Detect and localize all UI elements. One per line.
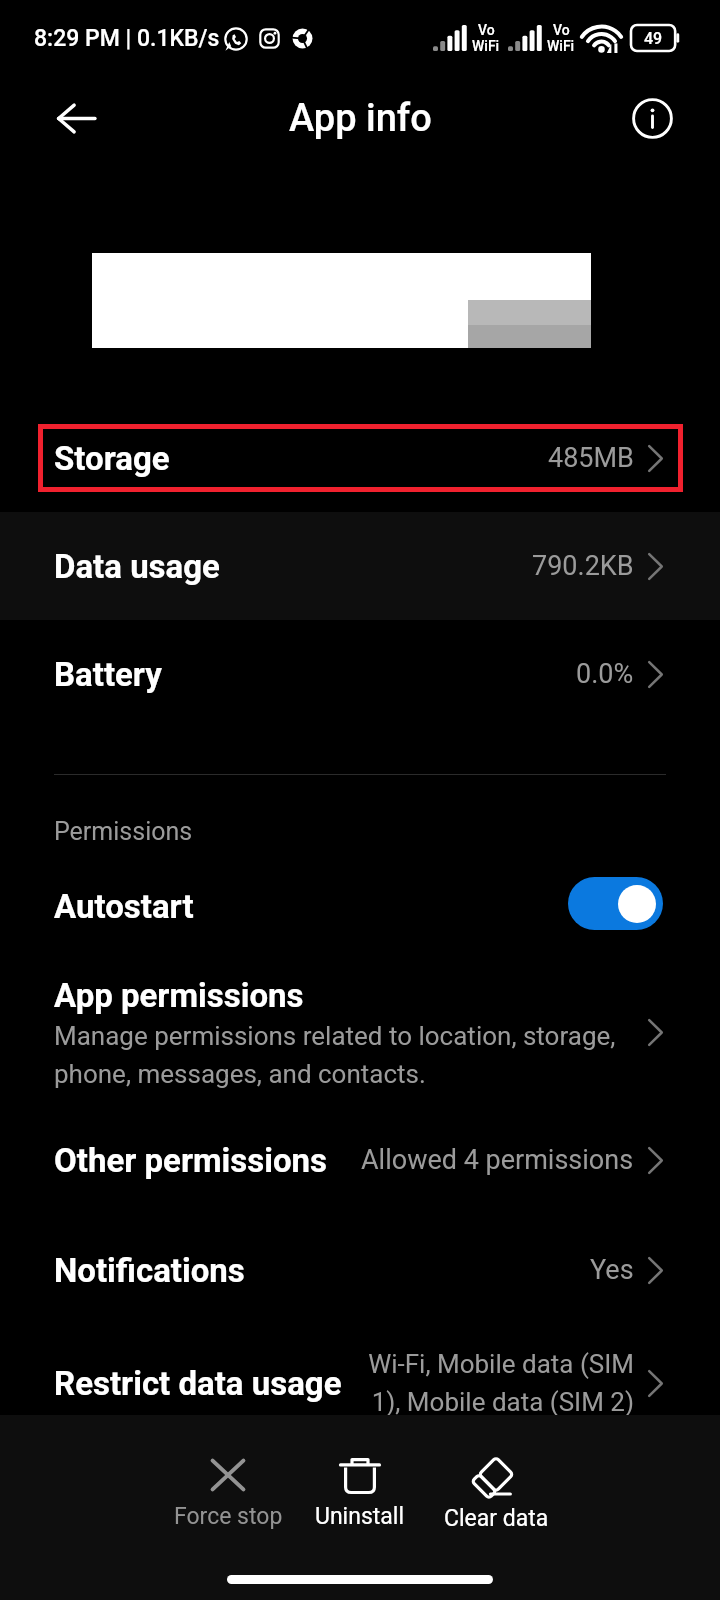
staticText: 8:29 PM | 0.1KB/s bbox=[34, 25, 220, 52]
button[interactable]: App details bbox=[624, 90, 680, 146]
staticText: 0.0% bbox=[576, 658, 634, 690]
button[interactable]: Force stop bbox=[162, 1456, 294, 1530]
staticText: Battery bbox=[54, 655, 162, 694]
staticText: Storage bbox=[54, 439, 170, 478]
staticText: Allowed 4 permissions bbox=[361, 1144, 634, 1176]
staticText: 49 bbox=[644, 29, 663, 48]
button[interactable]: Battery bbox=[0, 620, 720, 728]
staticText: Wi-Fi, Mobile data (SIM 1), Mobile data … bbox=[368, 1349, 634, 1417]
staticText: Yes bbox=[590, 1254, 634, 1286]
staticText: App permissions bbox=[54, 976, 304, 1015]
staticText: Force stop bbox=[174, 1503, 283, 1530]
staticText: App info bbox=[289, 96, 432, 141]
staticText: Data usage bbox=[54, 547, 220, 586]
button[interactable]: Other permissions bbox=[0, 1106, 720, 1214]
staticText: WiFi bbox=[472, 38, 500, 54]
staticText: Manage permissions related to location, … bbox=[54, 1021, 616, 1089]
staticText: Permissions bbox=[54, 817, 193, 846]
button[interactable]: Autostart bbox=[0, 858, 720, 954]
button[interactable]: Autostart bbox=[568, 877, 663, 930]
button[interactable]: Uninstall bbox=[294, 1456, 426, 1530]
button[interactable]: Back bbox=[48, 90, 104, 146]
button[interactable]: Data usage bbox=[0, 512, 720, 620]
staticText: Clear data bbox=[444, 1505, 549, 1532]
staticText: 485MB bbox=[548, 442, 634, 474]
button[interactable]: Storage bbox=[0, 404, 720, 512]
staticText: WiFi bbox=[547, 38, 575, 54]
button[interactable]: Restrict data usage bbox=[0, 1327, 720, 1439]
staticText: Notifications bbox=[54, 1251, 245, 1290]
staticText: Autostart bbox=[54, 887, 194, 926]
button[interactable]: App permissions bbox=[0, 962, 720, 1102]
staticText: Vo bbox=[553, 22, 570, 38]
staticText: Other permissions bbox=[54, 1141, 328, 1180]
staticText: 790.2KB bbox=[532, 550, 634, 582]
staticText: Restrict data usage bbox=[54, 1364, 342, 1403]
staticText: Uninstall bbox=[315, 1503, 405, 1530]
button[interactable]: Clear data bbox=[430, 1456, 562, 1532]
staticText: Vo bbox=[478, 22, 495, 38]
button[interactable]: Notifications bbox=[0, 1216, 720, 1324]
